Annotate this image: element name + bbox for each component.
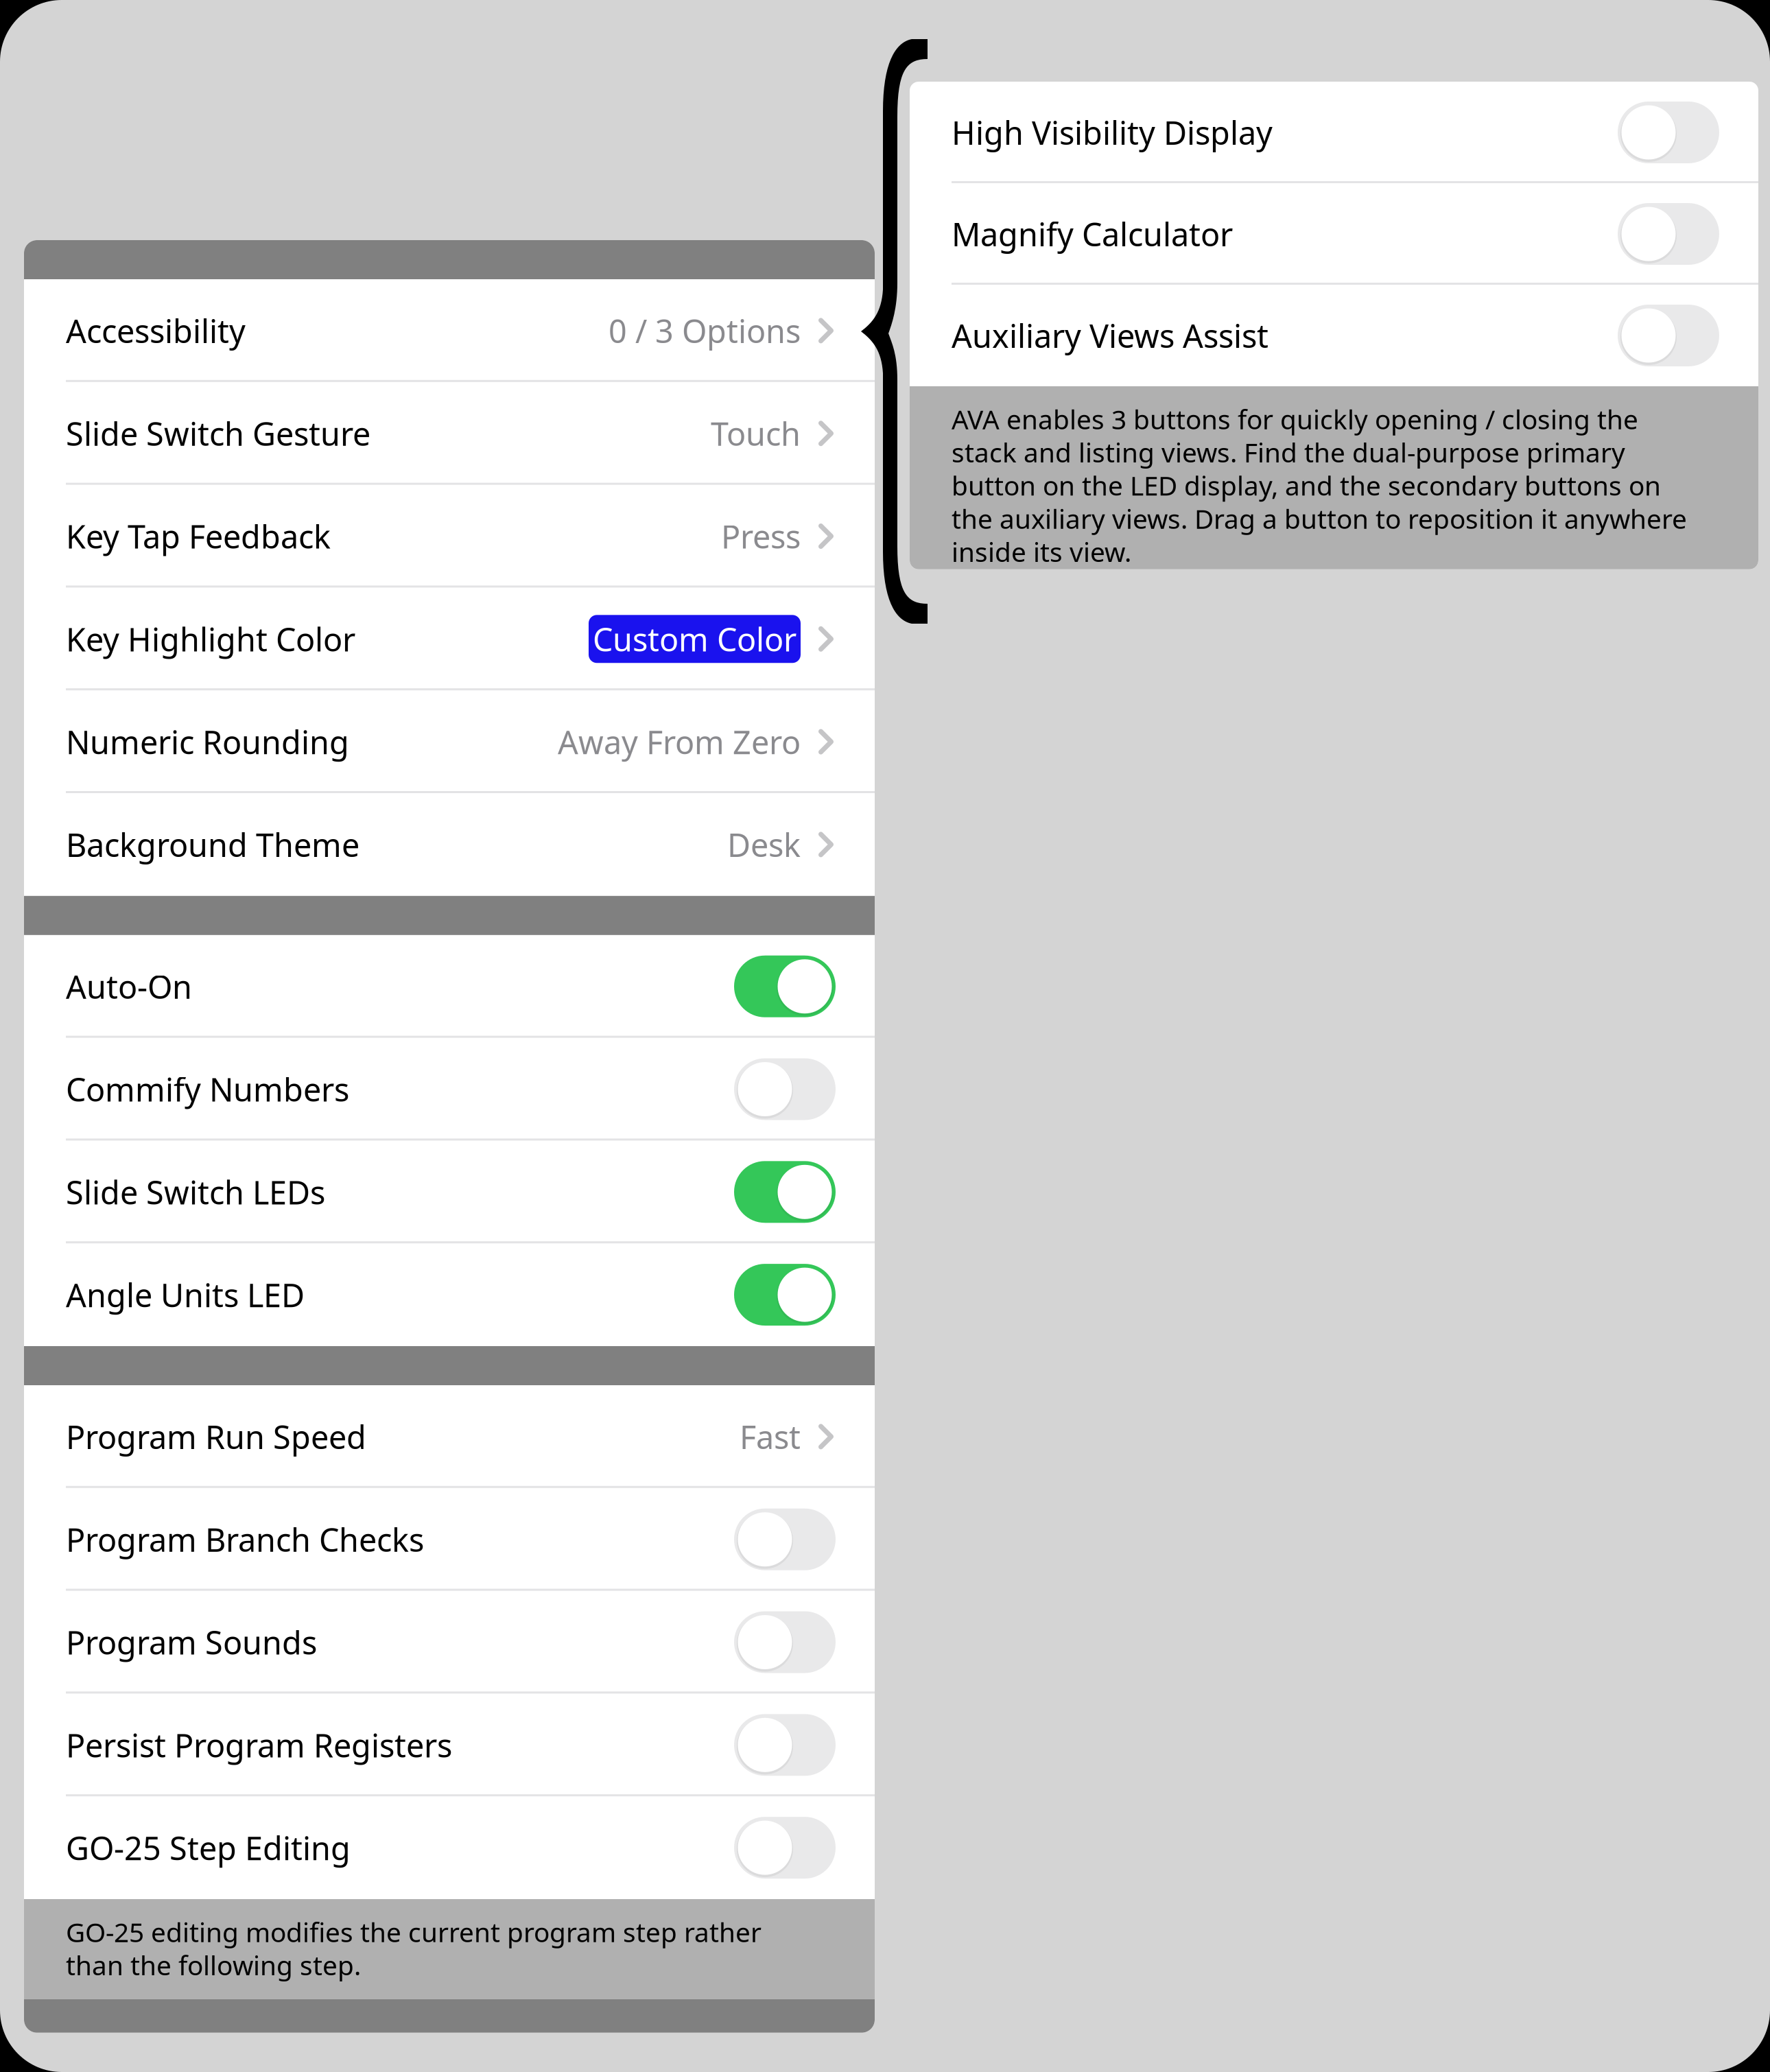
staticText: Key Tap Feedback — [66, 515, 331, 557]
staticText: Fast — [740, 1415, 801, 1458]
staticText: the auxiliary views. Drag a button to re… — [952, 501, 1687, 536]
staticText: Desk — [727, 823, 801, 866]
staticText: Custom Color — [593, 618, 796, 660]
button[interactable]: Magnify Calculator — [910, 183, 1758, 285]
staticText: Accessibility — [66, 309, 246, 352]
staticText: GO-25 editing modifies the current progr… — [66, 1914, 762, 1949]
staticText: Slide Switch LEDs — [66, 1171, 325, 1213]
staticText: 0 / 3 Options — [609, 309, 801, 352]
button[interactable]: Program Sounds — [24, 1591, 875, 1694]
button[interactable]: Program Run Speed — [24, 1385, 875, 1488]
button[interactable]: Numeric Rounding — [24, 690, 875, 793]
staticText: Angle Units LED — [66, 1273, 305, 1316]
staticText: Commify Numbers — [66, 1068, 349, 1110]
staticText: Auto-On — [66, 965, 192, 1008]
button[interactable]: Background Theme — [24, 793, 875, 896]
staticText: Press — [721, 515, 801, 557]
staticText: GO-25 Step Editing — [66, 1826, 351, 1869]
staticText: Away From Zero — [558, 720, 801, 763]
button[interactable]: Key Highlight Color — [24, 588, 875, 690]
staticText: Program Sounds — [66, 1621, 317, 1663]
staticText: Program Run Speed — [66, 1415, 366, 1458]
staticText: inside its view. — [952, 534, 1131, 569]
staticText: button on the LED display, and the secon… — [952, 468, 1661, 503]
button[interactable]: GO-25 Step Editing — [24, 1796, 875, 1899]
staticText: Slide Switch Gesture — [66, 412, 370, 455]
staticText: stack and listing views. Find the dual-p… — [952, 435, 1625, 470]
button[interactable]: Commify Numbers — [24, 1038, 875, 1141]
staticText: High Visibility Display — [952, 111, 1273, 154]
staticText: Magnify Calculator — [952, 213, 1233, 255]
staticText: than the following step. — [66, 1947, 361, 1983]
button[interactable]: Program Branch Checks — [24, 1488, 875, 1591]
button[interactable]: Auxiliary Views Assist — [910, 285, 1758, 386]
button[interactable]: High Visibility Display — [910, 82, 1758, 183]
staticText: AVA enables 3 buttons for quickly openin… — [952, 401, 1638, 437]
staticText: Numeric Rounding — [66, 720, 349, 763]
button[interactable]: Angle Units LED — [24, 1243, 875, 1346]
staticText: Key Highlight Color — [66, 618, 355, 660]
button[interactable]: Accessibility — [24, 279, 875, 382]
staticText: Persist Program Registers — [66, 1724, 452, 1766]
staticText: Program Branch Checks — [66, 1518, 424, 1561]
staticText: Auxiliary Views Assist — [952, 314, 1268, 357]
button[interactable]: Slide Switch Gesture — [24, 382, 875, 485]
button[interactable]: Auto-On — [24, 935, 875, 1038]
button[interactable]: Persist Program Registers — [24, 1694, 875, 1796]
staticText: Background Theme — [66, 823, 359, 866]
button[interactable]: Slide Switch LEDs — [24, 1141, 875, 1243]
button[interactable]: Key Tap Feedback — [24, 485, 875, 588]
staticText: Touch — [711, 412, 801, 455]
